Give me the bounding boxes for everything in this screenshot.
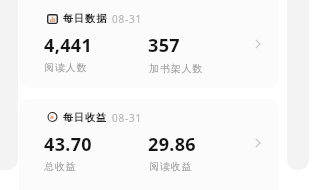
button[interactable] <box>19 0 279 88</box>
button[interactable]: 查看详情 <box>247 33 269 55</box>
button[interactable]: 查看详情 <box>247 132 269 154</box>
staticText: 总收益 <box>44 160 77 173</box>
staticText: 43.70 <box>44 132 92 157</box>
staticText: 每日数据 <box>63 12 108 25</box>
staticText: 29.86 <box>148 132 196 157</box>
staticText: 加书架人数 <box>149 62 204 75</box>
staticText: 阅读收益 <box>149 160 193 173</box>
staticText: 阅读人数 <box>44 61 88 74</box>
staticText: 08-31 <box>112 12 143 26</box>
staticText: 每日收益 <box>63 111 108 124</box>
staticText: 357 <box>148 33 180 58</box>
button[interactable] <box>19 99 279 190</box>
staticText: 4,441 <box>44 33 93 58</box>
staticText: 08-31 <box>112 111 143 125</box>
